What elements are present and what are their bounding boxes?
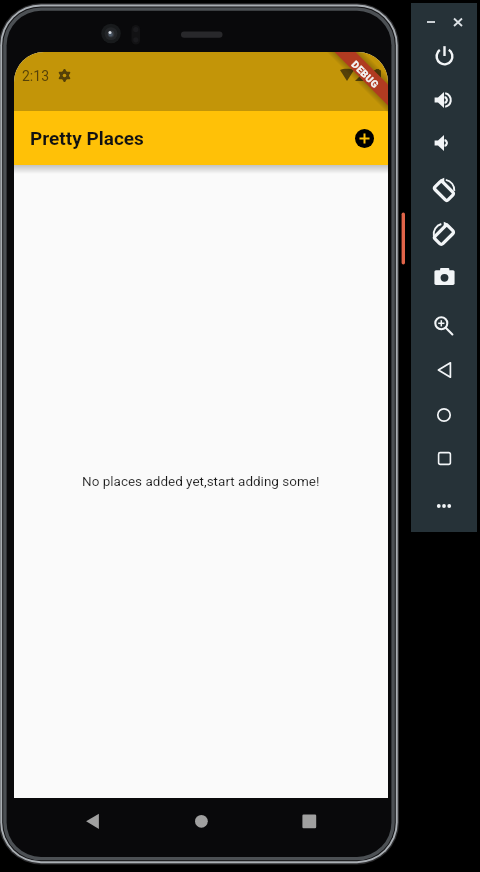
staticText: DEBUG: [349, 59, 381, 91]
button[interactable]: Power: [427, 38, 461, 72]
staticText: No places added yet,start adding some!: [82, 473, 320, 489]
button[interactable]: Zoom: [427, 309, 461, 343]
button[interactable]: More: [427, 489, 461, 523]
button[interactable]: Volume up: [427, 83, 461, 117]
button[interactable]: Overview: [427, 441, 461, 475]
staticText: 2:13: [22, 68, 49, 84]
button[interactable]: Screenshot: [427, 259, 461, 293]
button[interactable]: Rotate left: [427, 173, 461, 207]
button[interactable]: Back: [427, 353, 461, 387]
button[interactable]: Home: [427, 398, 461, 432]
button[interactable]: Add place: [349, 123, 379, 153]
button[interactable]: Volume down: [427, 126, 461, 160]
staticText: Pretty Places: [30, 127, 144, 149]
button[interactable]: Rotate right: [427, 217, 461, 251]
